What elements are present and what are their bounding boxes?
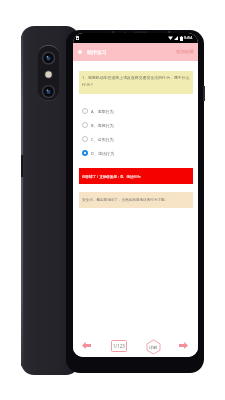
staticText: 顺序练习 bbox=[87, 49, 107, 55]
button[interactable]: Previous question bbox=[81, 340, 92, 350]
button[interactable]: D、违法行为 bbox=[73, 146, 198, 160]
staticText: 5:54 bbox=[184, 35, 193, 41]
button[interactable]: B、违规行为 bbox=[73, 118, 198, 132]
staticText: D、违法行为 bbox=[91, 151, 114, 156]
button[interactable]: A、违章行为 bbox=[73, 104, 198, 118]
staticText: 安全法，概定是违法了，当然也就是违法的行为了呢。 bbox=[82, 198, 169, 203]
staticText: 详解 bbox=[149, 345, 158, 350]
button[interactable]: 1/123 bbox=[111, 340, 127, 352]
button[interactable]: 详解 bbox=[147, 340, 160, 354]
staticText: 你答错了！正确答案是：D、违法行为 bbox=[82, 174, 141, 179]
button[interactable]: Back bbox=[73, 43, 87, 61]
staticText: 添加收藏 bbox=[176, 49, 194, 55]
staticText: 1、驾驶机动车在道路上违反道路交通安全法的行为，属于什么行为？ bbox=[82, 75, 190, 87]
staticText: C、过失行为 bbox=[91, 137, 114, 142]
button[interactable]: 添加收藏 bbox=[170, 45, 198, 59]
staticText: A、违章行为 bbox=[91, 109, 114, 114]
button[interactable]: Next question bbox=[178, 340, 189, 350]
staticText: B、违规行为 bbox=[91, 123, 114, 128]
staticText: 1/123 bbox=[113, 343, 125, 349]
button[interactable]: C、过失行为 bbox=[73, 132, 198, 146]
